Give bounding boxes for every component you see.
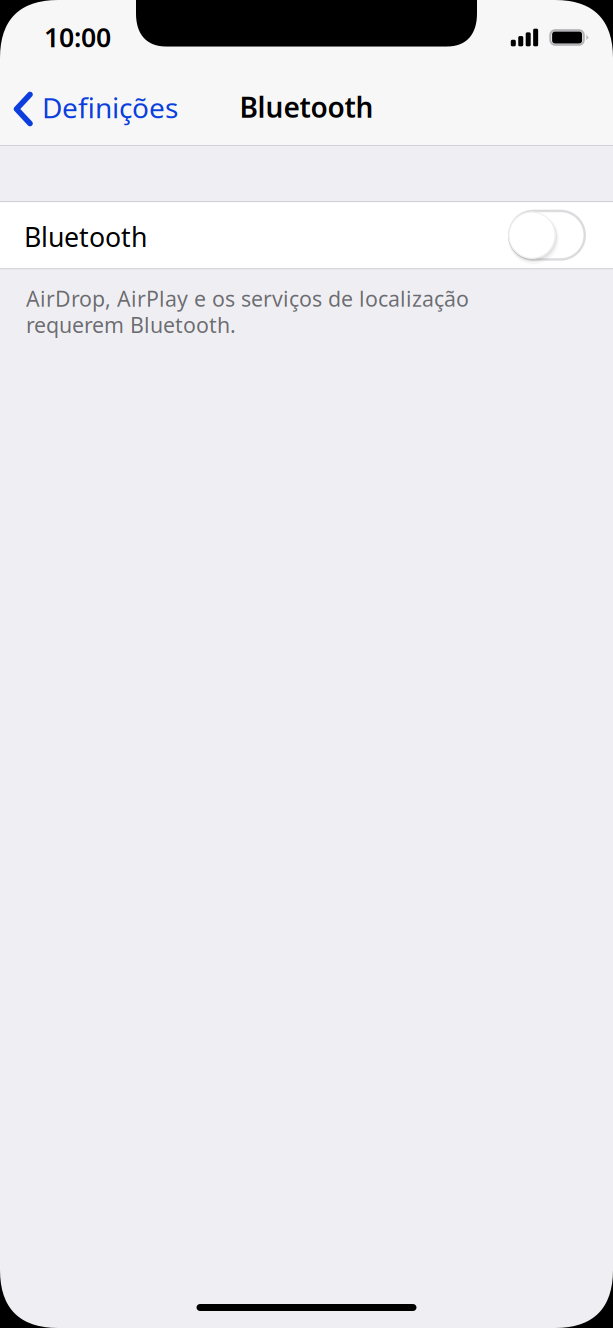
staticText: Bluetooth: [24, 219, 147, 254]
staticText: AirDrop, AirPlay e os serviços de locali…: [26, 284, 469, 312]
button[interactable]: Definições: [0, 77, 250, 141]
staticText: Bluetooth: [239, 88, 373, 126]
button[interactable]: Bluetooth: [0, 202, 613, 268]
staticText: requerem Bluetooth.: [26, 310, 236, 339]
staticText: 10:00: [44, 19, 111, 55]
staticText: Definições: [42, 89, 178, 126]
